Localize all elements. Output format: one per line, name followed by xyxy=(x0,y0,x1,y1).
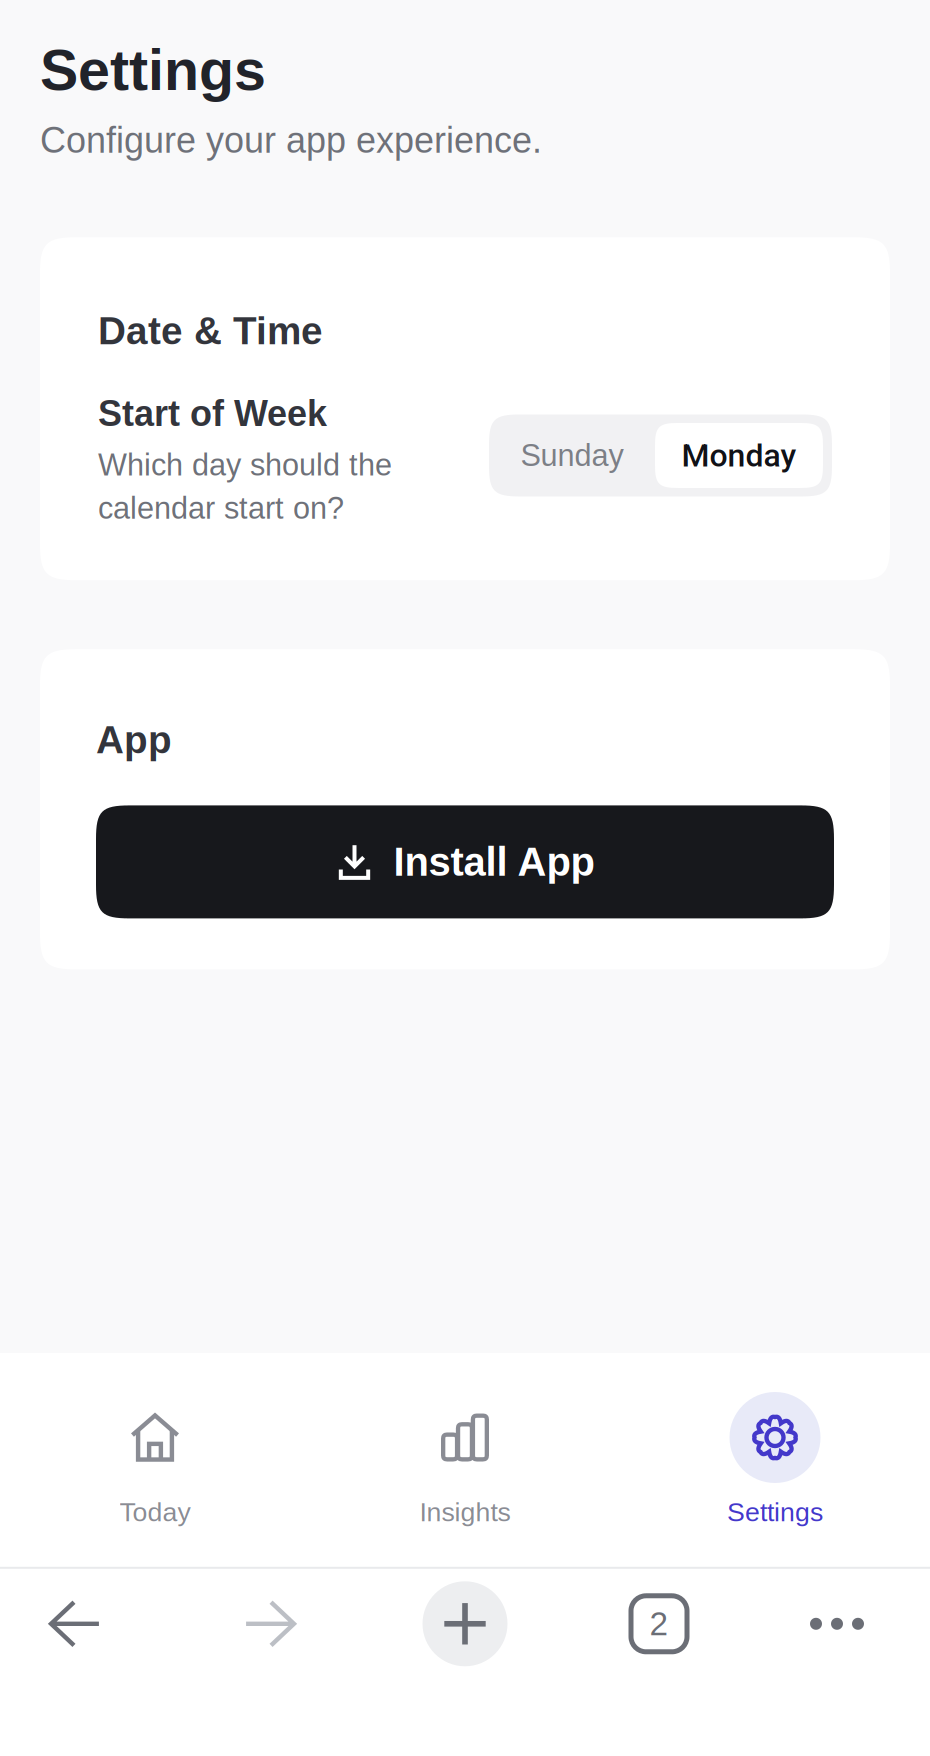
button[interactable]: Back xyxy=(20,1569,130,1679)
staticText: Which day should the xyxy=(98,448,392,482)
staticText: Insights xyxy=(419,1497,510,1527)
button[interactable]: More xyxy=(782,1569,892,1679)
button[interactable]: Settings xyxy=(620,1392,930,1527)
button[interactable]: New Tab xyxy=(410,1569,520,1679)
staticText: Date & Time xyxy=(98,309,323,352)
staticText: Start of Week xyxy=(98,393,327,434)
button[interactable]: Install App xyxy=(96,805,834,918)
button[interactable]: Sunday xyxy=(489,414,655,496)
staticText: Today xyxy=(119,1497,190,1527)
staticText: Settings xyxy=(40,38,266,102)
staticText: Configure your app experience. xyxy=(40,120,542,160)
staticText: Install App xyxy=(393,840,594,884)
button[interactable]: Tabs xyxy=(604,1569,714,1679)
button[interactable]: Insights xyxy=(310,1392,620,1527)
staticText: Settings xyxy=(727,1497,823,1527)
staticText: 2 xyxy=(649,1605,668,1642)
staticText: Sunday xyxy=(520,438,623,473)
button[interactable]: Monday xyxy=(655,423,823,488)
staticText: App xyxy=(96,718,172,761)
button[interactable]: Forward xyxy=(215,1569,325,1679)
staticText: calendar start on? xyxy=(98,491,344,525)
staticText: Monday xyxy=(681,437,796,474)
button[interactable]: Today xyxy=(0,1392,310,1527)
